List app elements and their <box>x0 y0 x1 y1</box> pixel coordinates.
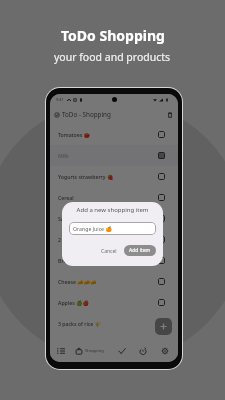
button[interactable]: Delete all <box>166 111 174 119</box>
staticText: Tomatoes 🍅 <box>58 131 91 138</box>
staticText: 2 bottles of water <box>58 236 102 243</box>
staticText: Bread 🍞 <box>58 257 81 264</box>
button[interactable]: History <box>134 340 151 362</box>
staticText: Milk <box>58 152 69 159</box>
staticText: Shopping <box>85 348 104 354</box>
staticText: Cereal <box>58 194 74 201</box>
button[interactable]: 2 bottles of water <box>50 229 178 250</box>
button[interactable]: Cereal <box>50 187 178 208</box>
staticText: Cheese 🧀🧀🧀 <box>58 278 97 285</box>
button[interactable]: Select all <box>53 111 60 118</box>
button[interactable]: Salad 🥗 <box>50 208 178 229</box>
staticText: ToDo Shopping <box>61 26 165 45</box>
button[interactable]: Lists <box>52 340 69 362</box>
button[interactable]: Apples 🍏🍎 <box>50 292 178 313</box>
staticText: 3 packs of rice 🌾 <box>58 320 102 327</box>
staticText: Salad 🥗 <box>58 215 80 222</box>
button[interactable]: Done <box>113 340 130 362</box>
button[interactable]: Tomatoes 🍅 <box>50 124 178 145</box>
button[interactable]: Bread 🍞 <box>50 250 178 271</box>
staticText: 9:41 <box>56 97 64 102</box>
button[interactable]: Shopping <box>70 340 108 362</box>
staticText: Add item <box>129 247 151 254</box>
button[interactable]: Cheese 🧀🧀🧀 <box>50 271 178 292</box>
button[interactable]: Orange Juice 🍊 <box>69 222 156 235</box>
button[interactable]: Add item <box>124 245 156 256</box>
button[interactable]: Yogurts strawberry 🍓 <box>50 166 178 187</box>
button[interactable]: Cancel <box>97 245 121 256</box>
staticText: Yogurts strawberry 🍓 <box>58 173 114 180</box>
staticText: ToDo - Shopping <box>62 110 111 119</box>
staticText: Orange Juice 🍊 <box>73 225 112 232</box>
button[interactable]: 3 packs of rice 🌾 <box>50 313 178 334</box>
staticText: Apples 🍏🍎 <box>58 299 89 306</box>
staticText: your food and products <box>54 50 171 64</box>
staticText: Cancel <box>101 248 117 253</box>
button[interactable]: Settings <box>156 340 173 362</box>
button[interactable]: Milk <box>50 145 178 166</box>
staticText: Add a new shopping item <box>69 206 156 214</box>
button[interactable]: Add item <box>155 318 172 335</box>
